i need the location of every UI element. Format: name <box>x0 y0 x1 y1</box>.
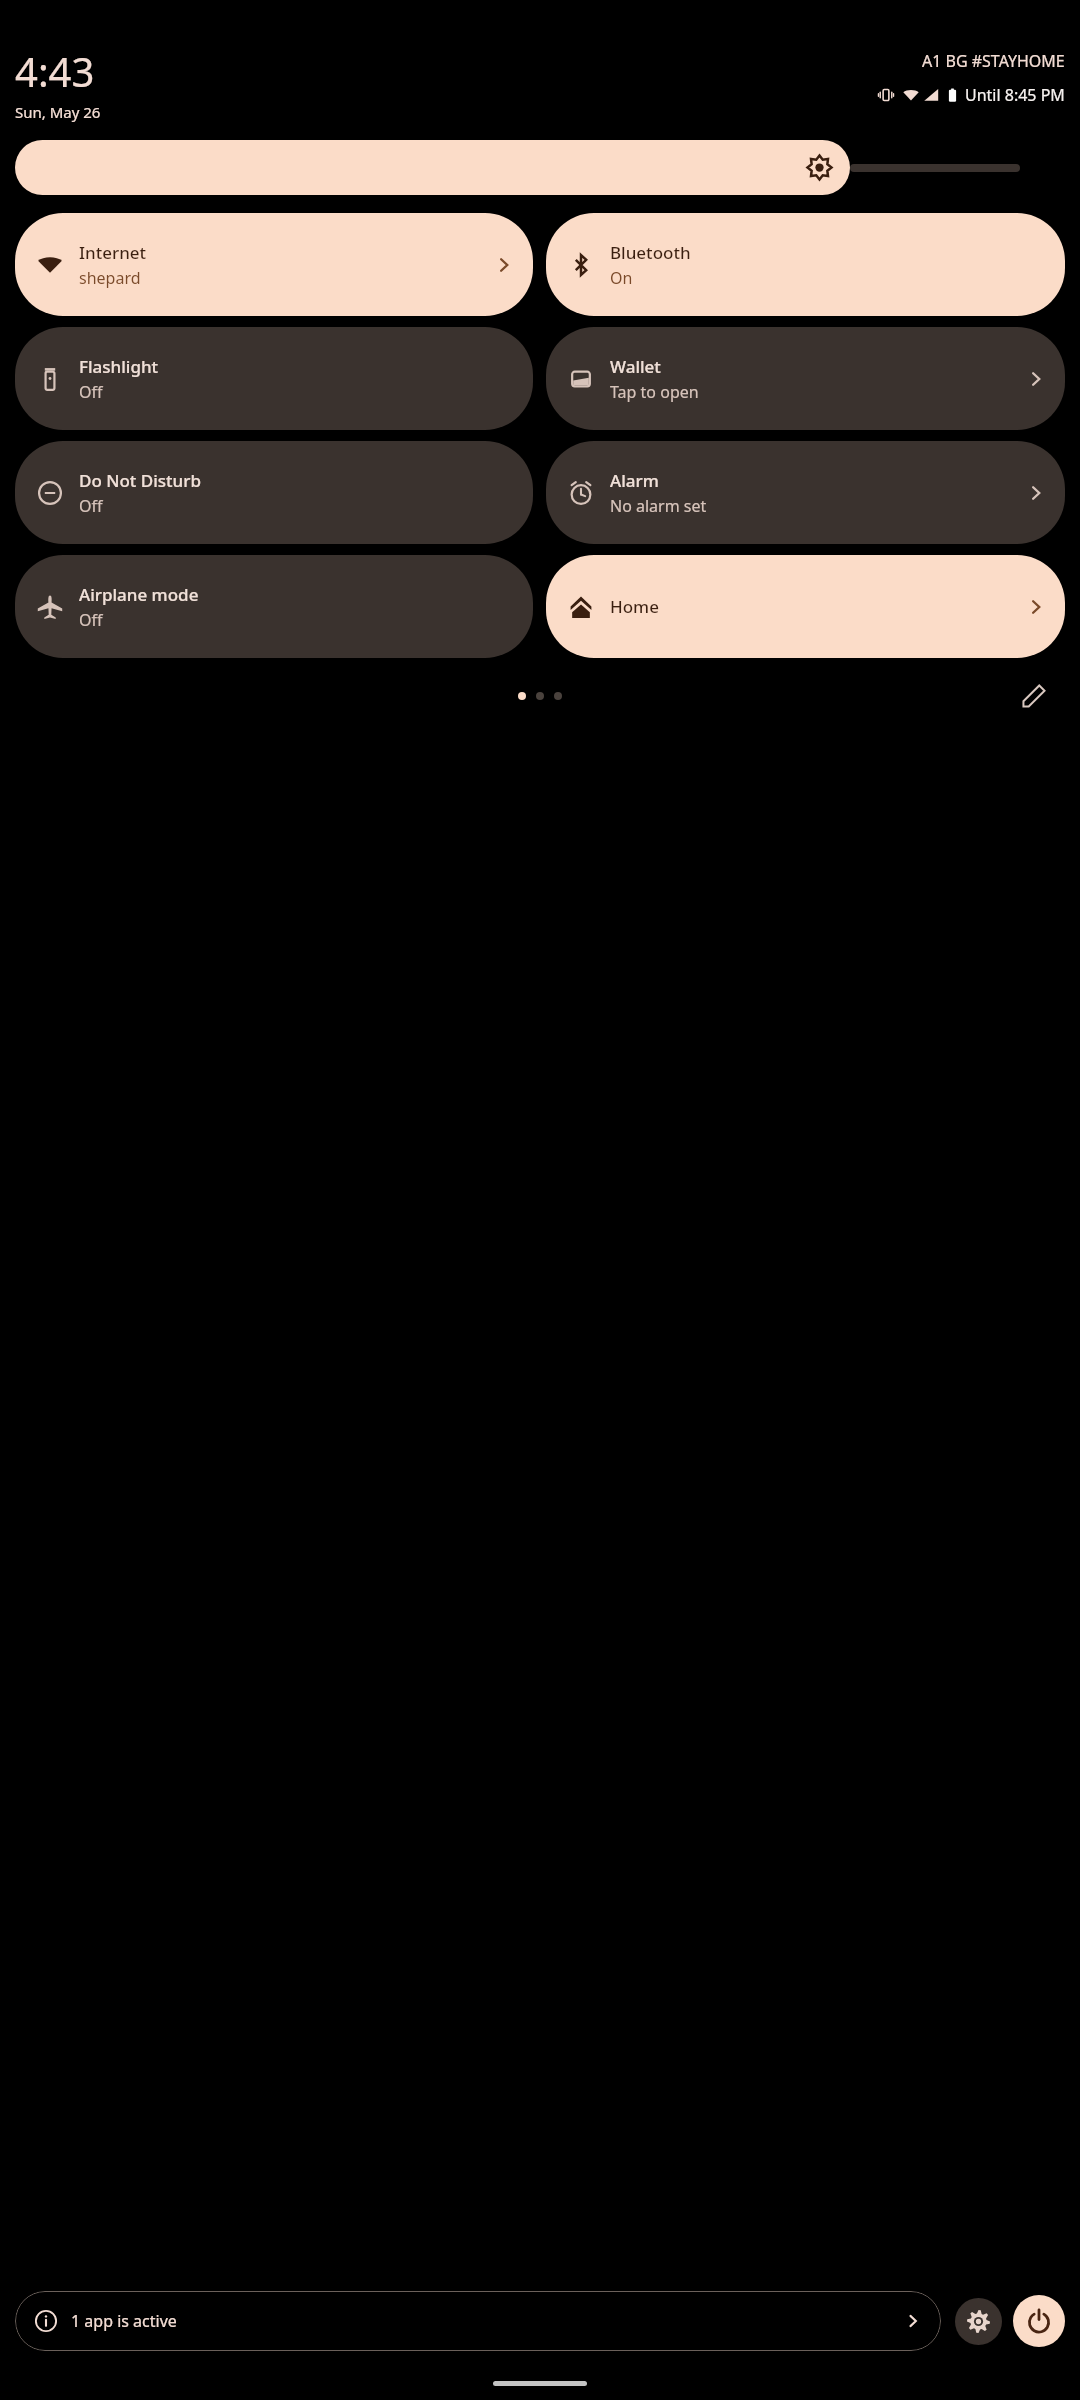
staticText: Off <box>79 495 103 517</box>
staticText: Alarm <box>610 469 659 492</box>
staticText: 4:43 <box>15 44 95 98</box>
staticText: Sun, May 26 <box>15 102 101 122</box>
button[interactable]: 1 app is active <box>15 2291 941 2351</box>
button[interactable]: Alarm <box>546 441 1065 544</box>
button[interactable]: Bluetooth <box>546 213 1065 316</box>
button[interactable]: Internet <box>15 213 533 316</box>
button[interactable]: Power <box>1013 2295 1065 2347</box>
staticText: Bluetooth <box>610 241 691 264</box>
button[interactable]: Edit tiles <box>1014 676 1054 716</box>
staticText: Do Not Disturb <box>79 469 201 492</box>
button[interactable]: Airplane mode <box>15 555 533 658</box>
staticText: Internet <box>79 241 147 264</box>
staticText: Flashlight <box>79 355 159 378</box>
staticText: 1 app is active <box>71 2310 177 2332</box>
button[interactable]: Flashlight <box>15 327 533 430</box>
staticText: Off <box>79 609 103 631</box>
staticText: Until 8:45 PM <box>965 84 1065 106</box>
button[interactable]: Home <box>546 555 1065 658</box>
button[interactable]: Wallet <box>546 327 1065 430</box>
staticText: shepard <box>79 267 141 289</box>
staticText: Wallet <box>610 355 661 378</box>
staticText: Off <box>79 381 103 403</box>
button[interactable]: Brightness <box>15 140 850 195</box>
staticText: Tap to open <box>610 381 699 403</box>
staticText: Airplane mode <box>79 583 199 606</box>
staticText: Home <box>610 595 659 618</box>
button[interactable]: Settings <box>955 2298 1002 2345</box>
staticText: No alarm set <box>610 495 707 517</box>
staticText: A1 BG #STAYHOME <box>922 50 1065 72</box>
staticText: On <box>610 267 633 289</box>
button[interactable]: Do Not Disturb <box>15 441 533 544</box>
